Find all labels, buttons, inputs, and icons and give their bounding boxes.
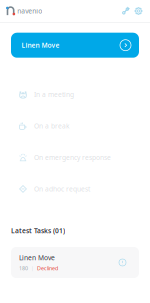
- button[interactable]: On adhoc request: [0, 173, 150, 205]
- staticText: |: [31, 265, 34, 272]
- button[interactable]: On a break: [0, 110, 150, 142]
- button[interactable]: In a meeting: [0, 79, 150, 110]
- staticText: 180: [19, 265, 28, 272]
- staticText: Linen Move: [21, 41, 59, 50]
- staticText: On a break: [34, 121, 70, 130]
- staticText: Linen Move: [19, 253, 55, 262]
- staticText: On emergency response: [34, 153, 111, 162]
- button[interactable]: On emergency response: [0, 142, 150, 173]
- staticText: Declined: [37, 265, 58, 272]
- staticText: navenio: [17, 7, 42, 15]
- button[interactable]: Call: [119, 4, 132, 17]
- staticText: In a meeting: [34, 90, 74, 99]
- button[interactable]: Linen Move: [11, 247, 139, 278]
- button[interactable]: Linen Move: [11, 33, 139, 58]
- staticText: Latest Tasks (01): [11, 226, 65, 235]
- staticText: On adhoc request: [34, 184, 90, 193]
- button[interactable]: Settings: [132, 4, 145, 17]
